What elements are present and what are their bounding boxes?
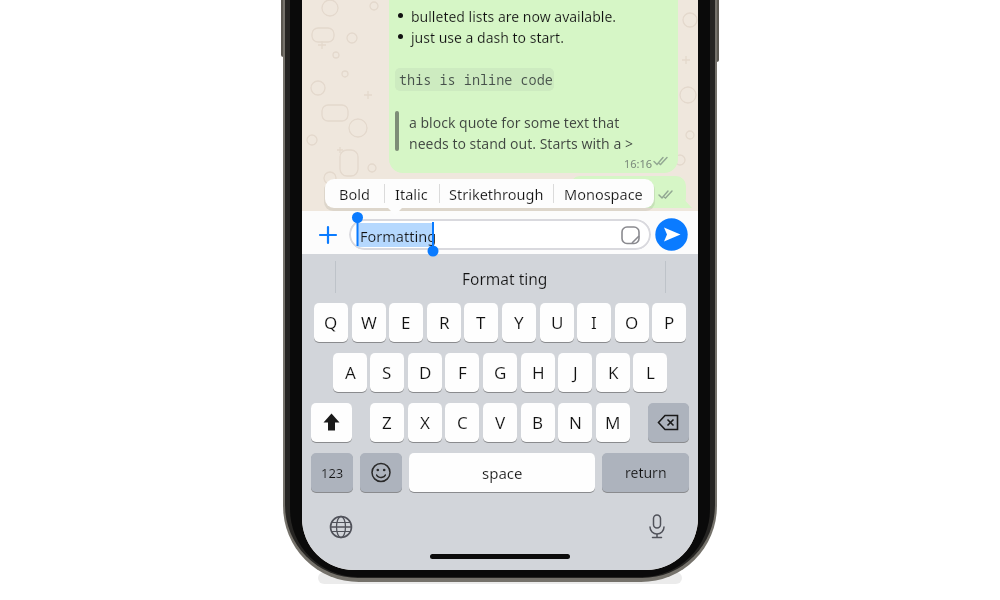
button[interactable]: W [352, 303, 386, 342]
button[interactable]: return [602, 453, 689, 492]
button[interactable]: R [427, 303, 461, 342]
button[interactable]: V [483, 403, 517, 442]
staticText: D [419, 361, 432, 384]
staticText: Strikethrough [449, 184, 544, 204]
staticText: U [551, 311, 564, 334]
button[interactable] [302, 254, 698, 302]
staticText: J [573, 361, 578, 384]
button[interactable]: Z [370, 403, 404, 442]
button[interactable]: O [615, 303, 649, 342]
button[interactable]: E [389, 303, 423, 342]
staticText: X [420, 411, 430, 434]
staticText: I [591, 311, 597, 334]
staticText: Y [514, 311, 524, 334]
staticText: H [532, 361, 545, 384]
button[interactable]: H [521, 353, 555, 392]
button[interactable]: Strikethrough [439, 179, 553, 208]
staticText: Monospace [564, 184, 643, 204]
button[interactable] [360, 453, 402, 492]
staticText: return [625, 463, 667, 482]
staticText: Q [324, 311, 338, 334]
staticText: E [401, 311, 411, 334]
button[interactable]: C [445, 403, 479, 442]
staticText: Bold [339, 184, 370, 204]
staticText: K [608, 361, 619, 384]
staticText: T [476, 311, 486, 334]
staticText: Italic [395, 184, 428, 204]
staticText: W [361, 311, 377, 334]
button[interactable] [648, 403, 689, 442]
button[interactable]: 123 [311, 453, 353, 492]
button[interactable]: space [409, 453, 595, 492]
staticText: S [382, 361, 392, 384]
staticText: Z [382, 411, 392, 434]
staticText: a block quote for some text that [409, 113, 620, 132]
button[interactable]: I [577, 303, 611, 342]
button[interactable]: J [558, 353, 592, 392]
staticText: G [494, 361, 507, 384]
button[interactable]: N [558, 403, 592, 442]
button[interactable]: Q [314, 303, 348, 342]
staticText: Formatting [360, 226, 437, 246]
staticText: B [532, 411, 544, 434]
button[interactable]: T [464, 303, 498, 342]
button[interactable]: L [633, 353, 667, 392]
staticText: A [345, 361, 356, 384]
button[interactable]: X [408, 403, 442, 442]
staticText: this is inline code [399, 71, 553, 89]
button[interactable]: M [596, 403, 630, 442]
button[interactable]: Italic [384, 179, 439, 208]
staticText: F [458, 361, 467, 384]
staticText: needs to stand out. Starts with a > [409, 134, 633, 153]
staticText: bulleted lists are now available. [411, 7, 617, 26]
staticText: R [439, 311, 450, 334]
button[interactable]: K [596, 353, 630, 392]
button[interactable]: Monospace [553, 179, 654, 208]
staticText: V [495, 411, 506, 434]
button[interactable]: Y [502, 303, 536, 342]
button[interactable]: G [483, 353, 517, 392]
button[interactable]: P [652, 303, 686, 342]
button[interactable]: Bold [325, 179, 384, 208]
staticText: L [646, 361, 655, 384]
staticText: just use a dash to start. [411, 28, 564, 47]
staticText: M [605, 411, 621, 434]
staticText: O [625, 311, 639, 334]
staticText: space [482, 463, 523, 483]
button[interactable]: S [370, 353, 404, 392]
button[interactable]: A [333, 353, 367, 392]
staticText: C [457, 411, 468, 434]
button[interactable]: F [445, 353, 479, 392]
staticText: 16:16 [624, 156, 653, 171]
button[interactable]: U [540, 303, 574, 342]
staticText: P [664, 311, 675, 334]
button[interactable] [311, 403, 352, 442]
button[interactable]: D [408, 353, 442, 392]
staticText: N [569, 411, 582, 434]
button[interactable] [349, 219, 651, 250]
button[interactable]: B [521, 403, 555, 442]
staticText: Format ting [462, 268, 548, 289]
staticText: 123 [321, 464, 344, 482]
